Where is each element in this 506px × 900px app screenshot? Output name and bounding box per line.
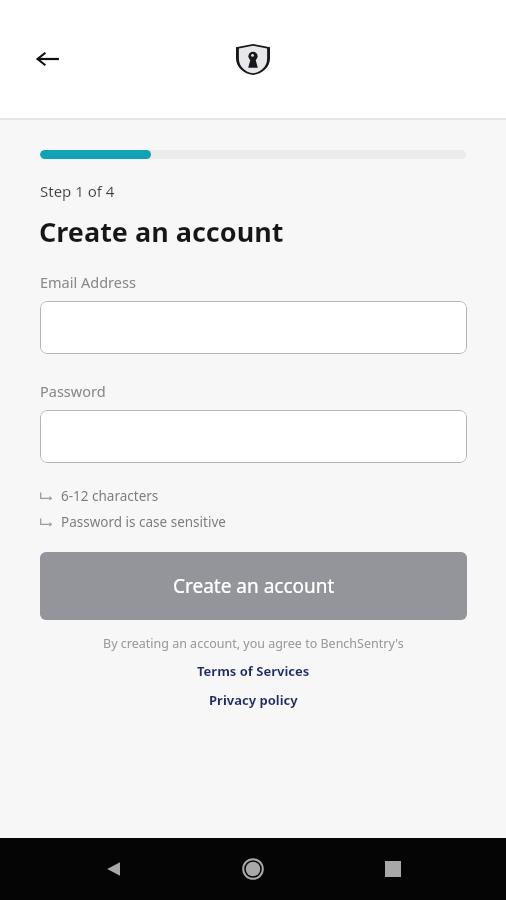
button[interactable]: Privacy policy bbox=[0, 691, 506, 709]
button[interactable] bbox=[40, 410, 467, 463]
staticText: 6-12 characters bbox=[61, 487, 159, 505]
staticText: By creating an account, you agree to Ben… bbox=[103, 635, 404, 652]
staticText: Create an account bbox=[173, 573, 335, 599]
staticText: Create an account bbox=[39, 213, 284, 250]
button[interactable]: Back bbox=[88, 843, 140, 895]
staticText: Password is case sensitive bbox=[61, 513, 226, 531]
staticText: Terms of Services bbox=[197, 662, 310, 680]
button[interactable]: Terms of Services bbox=[0, 662, 506, 680]
staticText: Email Address bbox=[40, 272, 136, 292]
button[interactable]: Home bbox=[227, 843, 279, 895]
other: BenchSentry logo bbox=[236, 42, 270, 76]
staticText: Privacy policy bbox=[209, 691, 298, 709]
staticText: Step 1 of 4 bbox=[40, 181, 115, 201]
button[interactable] bbox=[40, 301, 467, 354]
button[interactable]: Recent apps bbox=[367, 843, 419, 895]
button[interactable]: Back bbox=[24, 35, 72, 83]
button[interactable]: Create an account bbox=[40, 552, 467, 620]
staticText: Password bbox=[40, 381, 106, 401]
